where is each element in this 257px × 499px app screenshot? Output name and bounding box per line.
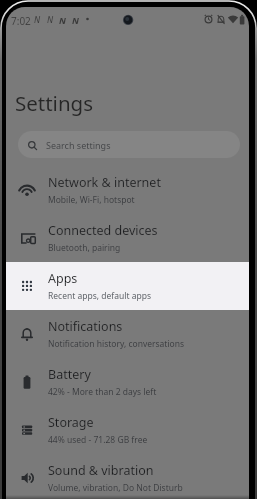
button[interactable]: Storage <box>6 406 249 454</box>
button[interactable]: Battery <box>6 358 249 406</box>
staticText: N <box>72 14 79 26</box>
staticText: N <box>59 14 66 26</box>
staticText: Notifications <box>48 318 123 335</box>
staticText: 42% - More than 2 days left <box>48 386 157 398</box>
button[interactable]: Network & internet <box>6 166 249 214</box>
staticText: Network & internet <box>48 174 161 191</box>
staticText: Bluetooth, pairing <box>48 242 121 254</box>
staticText: Battery <box>48 366 91 383</box>
staticText: Connected devices <box>48 222 158 239</box>
button[interactable]: Notifications <box>6 310 249 358</box>
button[interactable]: Apps <box>6 262 249 310</box>
staticText: Volume, vibration, Do Not Disturb <box>48 482 183 494</box>
staticText: Search settings <box>46 139 111 151</box>
staticText: 44% used - 71.28 GB free <box>48 434 148 446</box>
staticText: 7:02 <box>11 14 31 28</box>
button[interactable]: Sound & vibration <box>6 454 249 499</box>
button[interactable]: Search settings <box>18 131 240 158</box>
staticText: Mobile, Wi-Fi, hotspot <box>48 194 135 206</box>
staticText: Notification history, conversations <box>48 338 185 350</box>
button[interactable]: Connected devices <box>6 214 249 262</box>
staticText: Apps <box>48 270 78 287</box>
staticText: Storage <box>48 414 94 431</box>
staticText: Settings <box>15 89 94 117</box>
staticText: Sound & vibration <box>48 462 154 479</box>
staticText: Recent apps, default apps <box>48 290 152 302</box>
staticText: N <box>34 14 41 26</box>
staticText: N <box>47 14 54 26</box>
